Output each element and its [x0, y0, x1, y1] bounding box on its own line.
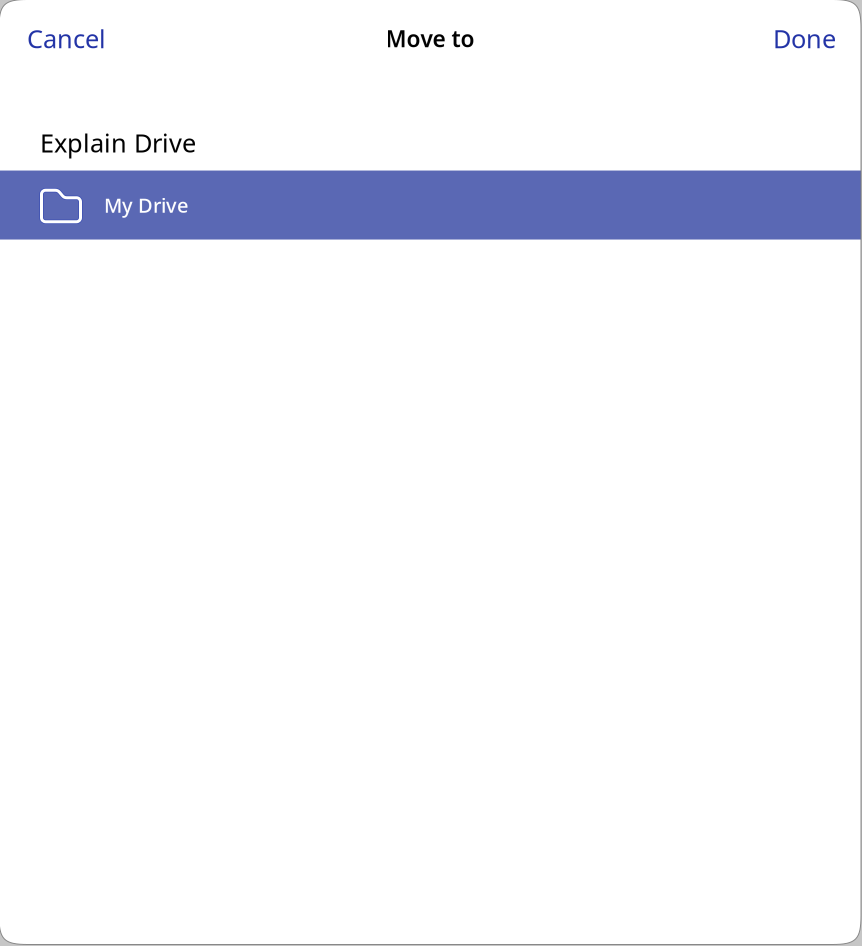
button[interactable]: My Drive: [0, 170, 861, 239]
staticText: Cancel: [27, 22, 106, 55]
button[interactable]: Done: [748, 9, 861, 68]
staticText: Done: [773, 22, 836, 55]
staticText: Explain Drive: [40, 126, 196, 159]
staticText: My Drive: [104, 192, 188, 218]
button[interactable]: Cancel: [0, 9, 134, 68]
staticText: Move to: [385, 23, 474, 53]
